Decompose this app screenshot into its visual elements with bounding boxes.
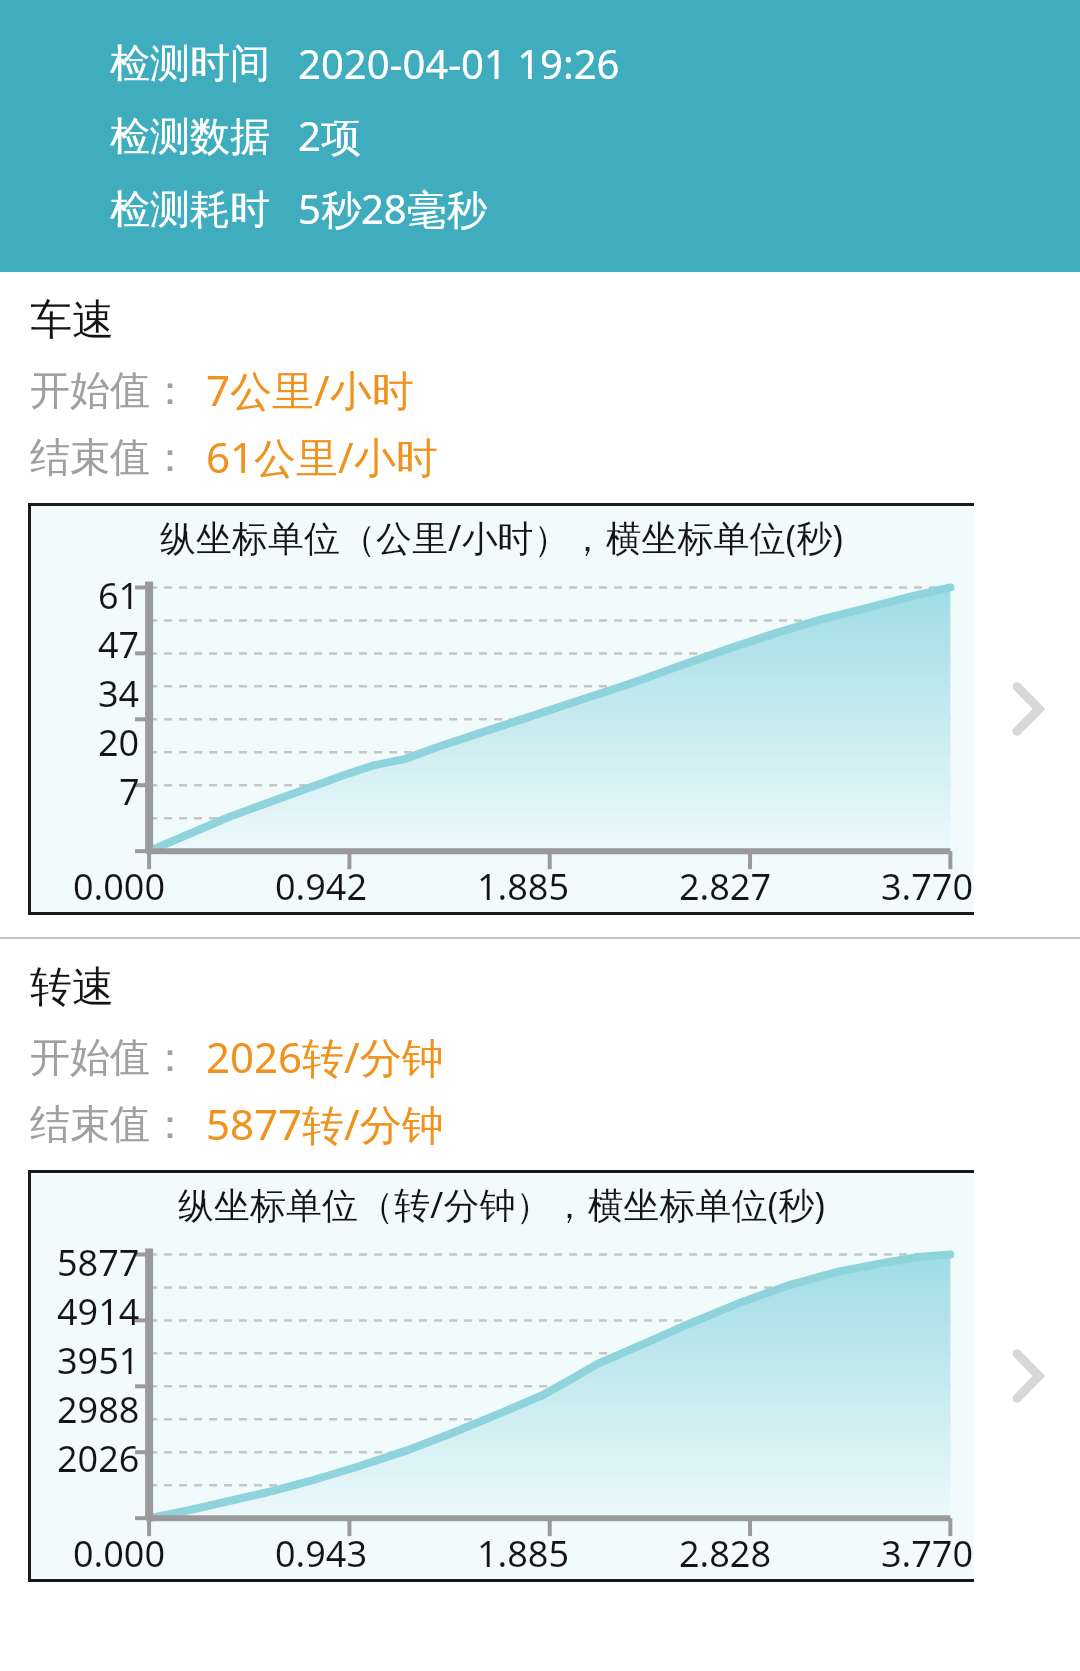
staticText: 7	[119, 767, 140, 815]
button[interactable]: 车速 chart	[28, 503, 974, 915]
staticText: 0.000	[73, 862, 166, 911]
staticText: 2.827	[679, 862, 772, 911]
staticText: 开始值：	[30, 1032, 190, 1082]
staticText: 61公里/小时	[206, 428, 438, 485]
staticText: 1.885	[477, 1529, 570, 1578]
staticText: 5877	[57, 1238, 140, 1287]
staticText: 20	[98, 718, 140, 767]
staticText: 2020-04-01 19:26	[298, 36, 620, 90]
staticText: 纵坐标单位（转/分钟），横坐标单位(秒)	[178, 1180, 825, 1229]
staticText: 0.942	[275, 862, 368, 911]
staticText: 5877转/分钟	[206, 1095, 444, 1152]
staticText: 34	[98, 669, 140, 718]
button[interactable]: Next 转速	[974, 1170, 1080, 1582]
staticText: 2项	[298, 108, 361, 163]
staticText: 4914	[57, 1287, 140, 1336]
staticText: 开始值：	[30, 365, 190, 415]
button[interactable]: Next 车速	[974, 503, 1080, 915]
staticText: 0.943	[275, 1529, 368, 1578]
staticText: 结束值：	[30, 1099, 190, 1149]
staticText: 61	[98, 571, 140, 620]
staticText: 纵坐标单位（公里/小时），横坐标单位(秒)	[160, 513, 843, 562]
staticText: 3.770	[881, 862, 974, 911]
staticText: 3.770	[881, 1529, 974, 1578]
staticText: 7公里/小时	[206, 361, 414, 418]
staticText: 检测数据	[110, 111, 270, 161]
staticText: 47	[98, 620, 140, 669]
staticText: 2026	[57, 1434, 140, 1482]
staticText: 2026转/分钟	[206, 1028, 444, 1085]
staticText: 0.000	[73, 1529, 166, 1578]
staticText: 1.885	[477, 862, 570, 911]
staticText: 车速	[30, 294, 114, 347]
staticText: 结束值：	[30, 432, 190, 482]
staticText: 2.828	[679, 1529, 772, 1578]
staticText: 转速	[30, 961, 114, 1014]
staticText: 检测时间	[110, 38, 270, 88]
staticText: 检测耗时	[110, 184, 270, 234]
button[interactable]: 转速 chart	[28, 1170, 974, 1582]
staticText: 5秒28毫秒	[298, 181, 487, 236]
staticText: 3951	[57, 1336, 140, 1385]
staticText: 2988	[57, 1385, 140, 1434]
